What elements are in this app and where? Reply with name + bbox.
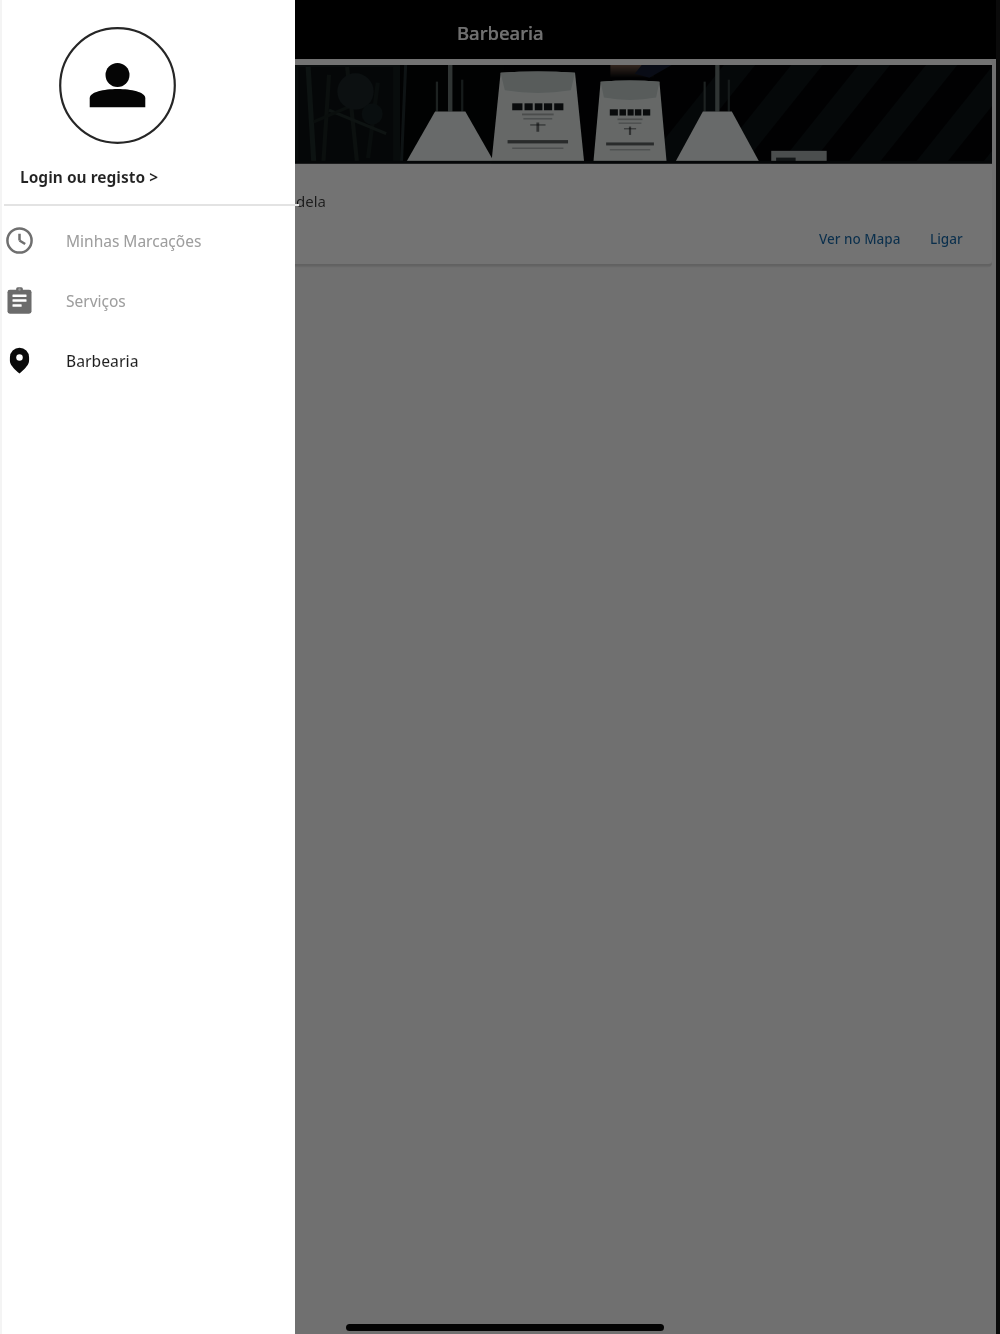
staticText: Serviços [66,290,126,311]
button[interactable]: Barbearia [0,330,295,390]
staticText: Login ou registo > [20,166,159,187]
button[interactable]: Ligar [922,222,971,256]
button[interactable]: Serviços [0,270,295,330]
staticText: Barbearia [66,350,139,371]
staticText: Rua Doutor Jose de Almeida, Vila de Cade… [23,191,326,211]
button[interactable]: Fechar menu [0,0,1000,1334]
staticText: Ligar [930,230,963,248]
button[interactable]: Login ou registo > [0,0,295,204]
button[interactable]: Ver no Mapa [811,222,909,256]
button[interactable]: Minhas Marcações [0,210,295,270]
staticText: Ver no Mapa [819,230,901,248]
staticText: Minhas Marcações [66,230,202,251]
staticText: Barbearia [457,20,544,45]
